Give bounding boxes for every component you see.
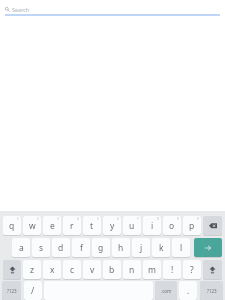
button[interactable]: i: [143, 216, 161, 235]
staticText: 4: [77, 217, 79, 221]
staticText: ?: [190, 264, 194, 276]
staticText: a: [19, 242, 24, 254]
button[interactable]: c: [63, 260, 81, 279]
staticText: i: [151, 220, 154, 232]
staticText: s: [39, 242, 44, 254]
staticText: b: [109, 264, 115, 276]
staticText: 9: [177, 217, 179, 221]
button[interactable]: s: [32, 238, 50, 257]
staticText: v: [90, 264, 95, 276]
staticText: l: [180, 242, 183, 254]
staticText: 2: [37, 217, 39, 221]
staticText: p: [189, 220, 195, 232]
button[interactable]: [194, 238, 222, 257]
button[interactable]: r: [63, 216, 81, 235]
button[interactable]: t: [83, 216, 101, 235]
button[interactable]: !: [163, 260, 181, 279]
button[interactable]: m: [143, 260, 161, 279]
staticText: z: [30, 264, 34, 276]
staticText: 7: [137, 217, 139, 221]
staticText: q: [9, 220, 15, 232]
staticText: ?123: [207, 288, 217, 294]
button[interactable]: ?123: [200, 281, 223, 300]
button[interactable]: .: [179, 281, 197, 300]
staticText: d: [58, 242, 64, 254]
button[interactable]: a: [12, 238, 30, 257]
staticText: 8: [157, 217, 159, 221]
staticText: u: [129, 220, 135, 232]
button[interactable]: [3, 260, 21, 279]
staticText: j: [140, 242, 143, 254]
button[interactable]: u: [123, 216, 141, 235]
button[interactable]: /: [24, 281, 42, 300]
staticText: 5: [97, 217, 99, 221]
staticText: k: [159, 242, 164, 254]
button[interactable]: y: [103, 216, 121, 235]
staticText: w: [29, 220, 36, 232]
button[interactable]: w: [23, 216, 41, 235]
button[interactable]: Search: [0, 0, 225, 18]
button[interactable]: p: [183, 216, 201, 235]
staticText: x: [50, 264, 55, 276]
button[interactable]: x: [43, 260, 61, 279]
staticText: 6: [117, 217, 119, 221]
staticText: /: [31, 285, 35, 297]
button[interactable]: [203, 260, 222, 279]
button[interactable]: z: [23, 260, 41, 279]
staticText: o: [169, 220, 175, 232]
button[interactable]: b: [103, 260, 121, 279]
staticText: Search: [12, 6, 30, 13]
button[interactable]: d: [52, 238, 70, 257]
button[interactable]: g: [92, 238, 110, 257]
button[interactable]: h: [112, 238, 130, 257]
staticText: 1: [17, 217, 19, 221]
staticText: .: [187, 285, 190, 297]
button[interactable]: j: [132, 238, 150, 257]
staticText: y: [110, 220, 115, 232]
staticText: !: [171, 264, 174, 276]
button[interactable]: [203, 216, 222, 235]
staticText: g: [98, 242, 104, 254]
staticText: n: [129, 264, 135, 276]
button[interactable]: l: [172, 238, 190, 257]
staticText: e: [50, 220, 55, 232]
staticText: t: [90, 220, 94, 232]
staticText: ?123: [7, 288, 17, 294]
button[interactable]: e: [43, 216, 61, 235]
button[interactable]: f: [72, 238, 90, 257]
button[interactable]: q: [3, 216, 21, 235]
button[interactable]: ?123: [2, 281, 21, 300]
staticText: f: [80, 242, 83, 254]
button[interactable]: .com: [155, 281, 177, 300]
staticText: 0: [197, 217, 199, 221]
button[interactable]: k: [152, 238, 170, 257]
staticText: h: [118, 242, 124, 254]
button[interactable]: ?: [183, 260, 201, 279]
button[interactable]: v: [83, 260, 101, 279]
staticText: m: [148, 264, 156, 276]
staticText: c: [70, 264, 75, 276]
staticText: 3: [57, 217, 59, 221]
button[interactable]: n: [123, 260, 141, 279]
staticText: r: [70, 220, 74, 232]
staticText: .com: [161, 288, 172, 294]
button[interactable]: o: [163, 216, 181, 235]
